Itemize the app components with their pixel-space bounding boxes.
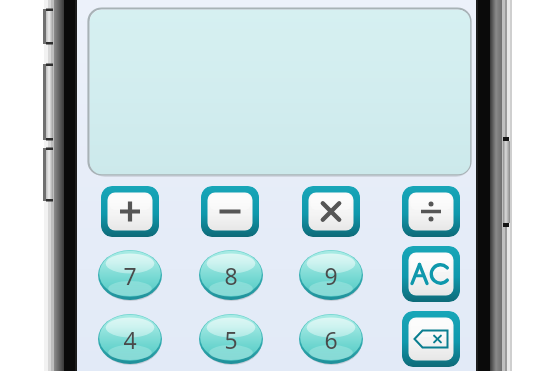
button[interactable]: 6 — [299, 314, 363, 364]
staticText: 8 — [224, 260, 238, 291]
button[interactable]: 5 — [199, 314, 263, 364]
staticText: 6 — [324, 324, 338, 355]
button[interactable]: 9 — [299, 250, 363, 300]
button[interactable]: Backspace — [402, 311, 460, 367]
button[interactable]: AC — [402, 246, 460, 302]
staticText: 5 — [224, 324, 238, 355]
staticText: 7 — [123, 260, 137, 291]
button[interactable]: 4 — [98, 314, 162, 364]
button[interactable]: Minus — [201, 186, 259, 237]
button[interactable]: Divide — [402, 186, 460, 237]
staticText: 4 — [123, 324, 137, 355]
button[interactable]: 7 — [98, 250, 162, 300]
staticText: 9 — [324, 260, 338, 291]
button[interactable]: Plus — [101, 186, 159, 237]
button[interactable]: 8 — [199, 250, 263, 300]
button[interactable]: Multiply — [302, 186, 360, 237]
